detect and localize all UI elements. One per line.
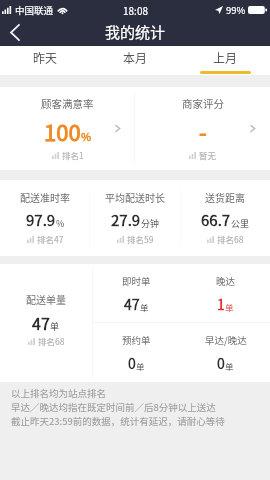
button[interactable]: 送货距离: [180, 180, 270, 256]
staticText: %: [81, 128, 92, 144]
button[interactable]: 上月: [180, 46, 270, 75]
button[interactable]: 晚达: [181, 264, 270, 323]
staticText: 100: [44, 115, 81, 147]
staticText: -: [199, 115, 207, 147]
staticText: 排名68: [217, 233, 244, 245]
staticText: 99%: [226, 3, 246, 17]
button[interactable]: 本月: [90, 46, 180, 75]
staticText: 配送准时率: [20, 190, 70, 204]
button[interactable]: 平均配送时长: [90, 180, 180, 256]
staticText: 单: [225, 360, 234, 372]
staticText: 本月: [123, 49, 148, 66]
staticText: 0: [217, 353, 225, 373]
staticText: 早达/晚达: [205, 333, 247, 347]
staticText: 即时单: [122, 274, 151, 288]
staticText: 我的统计: [105, 21, 166, 43]
staticText: 暂无: [199, 149, 217, 161]
staticText: 单: [140, 301, 149, 313]
staticText: 排名59: [127, 233, 154, 245]
button[interactable]: Back: [0, 18, 30, 46]
staticText: 单: [225, 301, 234, 313]
staticText: 分钟: [141, 217, 160, 230]
staticText: 送货距离: [205, 190, 245, 204]
staticText: 0: [128, 353, 136, 373]
staticText: 中国联通: [15, 3, 54, 17]
staticText: 47: [32, 311, 50, 334]
staticText: 商家评分: [182, 96, 224, 111]
staticText: 以上排名均为站点排名: [11, 386, 107, 400]
staticText: 预约单: [122, 333, 151, 347]
staticText: 平均配送时长: [105, 190, 165, 204]
button[interactable]: 配送准时率: [0, 180, 90, 256]
staticText: 公里: [231, 217, 250, 230]
staticText: 1: [217, 294, 225, 314]
staticText: 上月: [213, 49, 238, 66]
staticText: 早达／晚达均指在既定时间前／后8分钟以上送达: [11, 400, 216, 414]
staticText: 昨天: [33, 49, 58, 66]
button[interactable]: 昨天: [0, 46, 90, 75]
staticText: 27.9: [111, 209, 141, 231]
staticText: 配送单量: [26, 292, 66, 306]
button[interactable]: 早达/晚达: [181, 323, 270, 382]
staticText: 66.7: [201, 209, 231, 231]
staticText: 47: [124, 294, 140, 314]
staticText: 排名47: [37, 233, 64, 245]
staticText: 截止昨天23:59前的数据，统计有延迟，请耐心等待: [11, 414, 225, 428]
staticText: 晚达: [216, 274, 236, 288]
button[interactable]: 即时单: [92, 264, 181, 323]
button[interactable]: 预约单: [92, 323, 181, 382]
staticText: 单: [50, 320, 60, 333]
staticText: 排名68: [38, 335, 65, 347]
button[interactable]: 商家评分: [135, 87, 270, 170]
button[interactable]: 配送单量: [0, 264, 92, 382]
staticText: 单: [136, 360, 145, 372]
staticText: 97.9: [26, 209, 56, 231]
staticText: 顾客满意率: [41, 96, 94, 111]
staticText: 18:08: [123, 3, 148, 17]
button[interactable]: 顾客满意率: [0, 87, 135, 170]
staticText: %: [56, 217, 65, 230]
staticText: 排名1: [62, 149, 84, 161]
